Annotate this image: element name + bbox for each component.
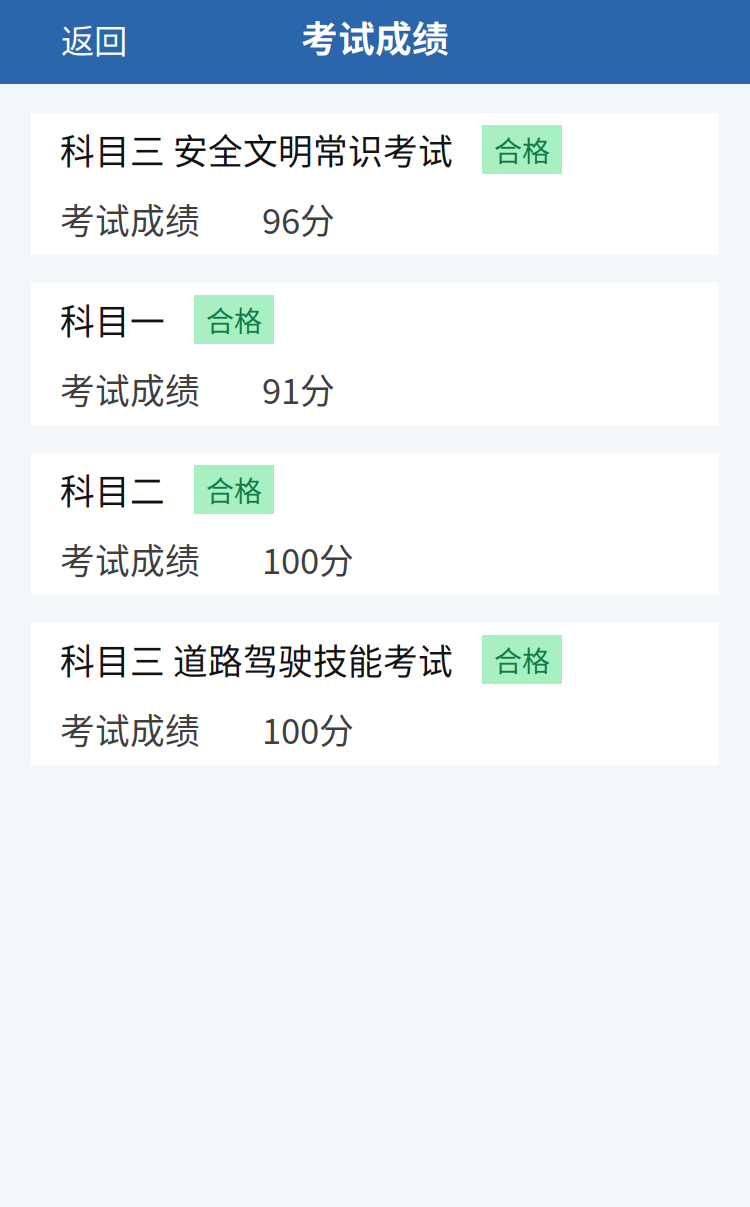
staticText: 100分 <box>262 704 354 754</box>
staticText: 100分 <box>262 534 354 584</box>
staticText: 96分 <box>262 194 335 244</box>
staticText: 91分 <box>262 364 335 414</box>
button[interactable]: 科目三 道路驾驶技能考试 <box>31 623 719 765</box>
staticText: 合格 <box>494 639 550 680</box>
staticText: 考试成绩 <box>60 534 200 584</box>
staticText: 考试成绩 <box>60 704 200 754</box>
staticText: 合格 <box>206 299 262 340</box>
staticText: 科目一 <box>60 294 165 345</box>
button[interactable]: 返回 <box>0 0 191 84</box>
staticText: 科目三 道路驾驶技能考试 <box>60 634 453 685</box>
staticText: 考试成绩 <box>60 194 200 244</box>
staticText: 考试成绩 <box>301 10 449 63</box>
staticText: 合格 <box>206 469 262 510</box>
button[interactable]: 科目三 安全文明常识考试 <box>31 113 719 255</box>
staticText: 科目二 <box>60 464 165 515</box>
button[interactable]: 科目二 <box>31 453 719 595</box>
staticText: 科目三 安全文明常识考试 <box>60 124 453 175</box>
staticText: 考试成绩 <box>60 364 200 414</box>
button[interactable]: 科目一 <box>31 283 719 425</box>
staticText: 返回 <box>61 15 127 63</box>
staticText: 合格 <box>494 129 550 170</box>
